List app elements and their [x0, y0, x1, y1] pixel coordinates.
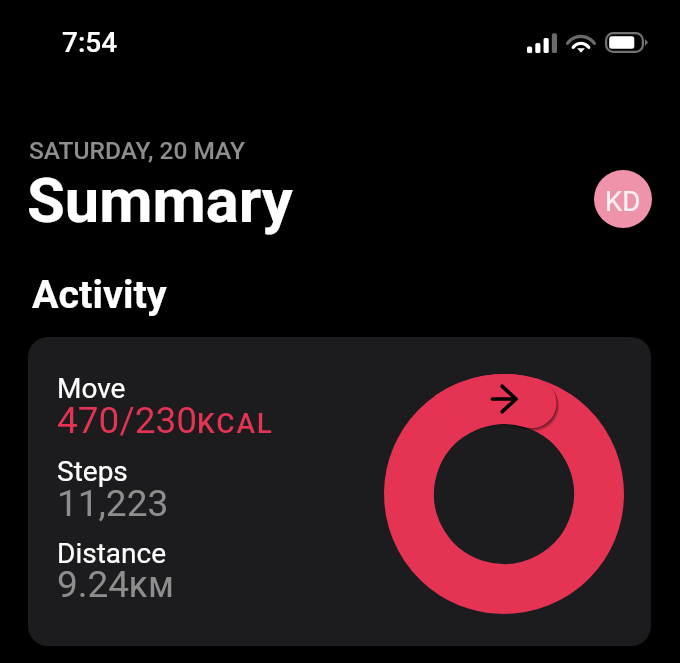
- staticText: KD: [605, 185, 641, 217]
- staticText: 11,223: [57, 482, 169, 525]
- button[interactable]: KD: [594, 170, 652, 228]
- staticText: Distance: [57, 537, 166, 570]
- staticText: Activity: [32, 271, 167, 317]
- staticText: Summary: [27, 165, 293, 237]
- staticText: 9.24KM: [57, 563, 176, 606]
- button[interactable]: Move activity ring, 470 of 230 kcal: [28, 337, 651, 646]
- staticText: Move: [57, 372, 126, 405]
- staticText: SATURDAY, 20 MAY: [29, 136, 245, 165]
- staticText: Steps: [57, 455, 128, 488]
- staticText: 7:54: [62, 26, 118, 59]
- staticText: 470/230KCAL: [57, 399, 274, 442]
- other: Move activity ring, 470 of 230 kcal: [384, 374, 624, 614]
